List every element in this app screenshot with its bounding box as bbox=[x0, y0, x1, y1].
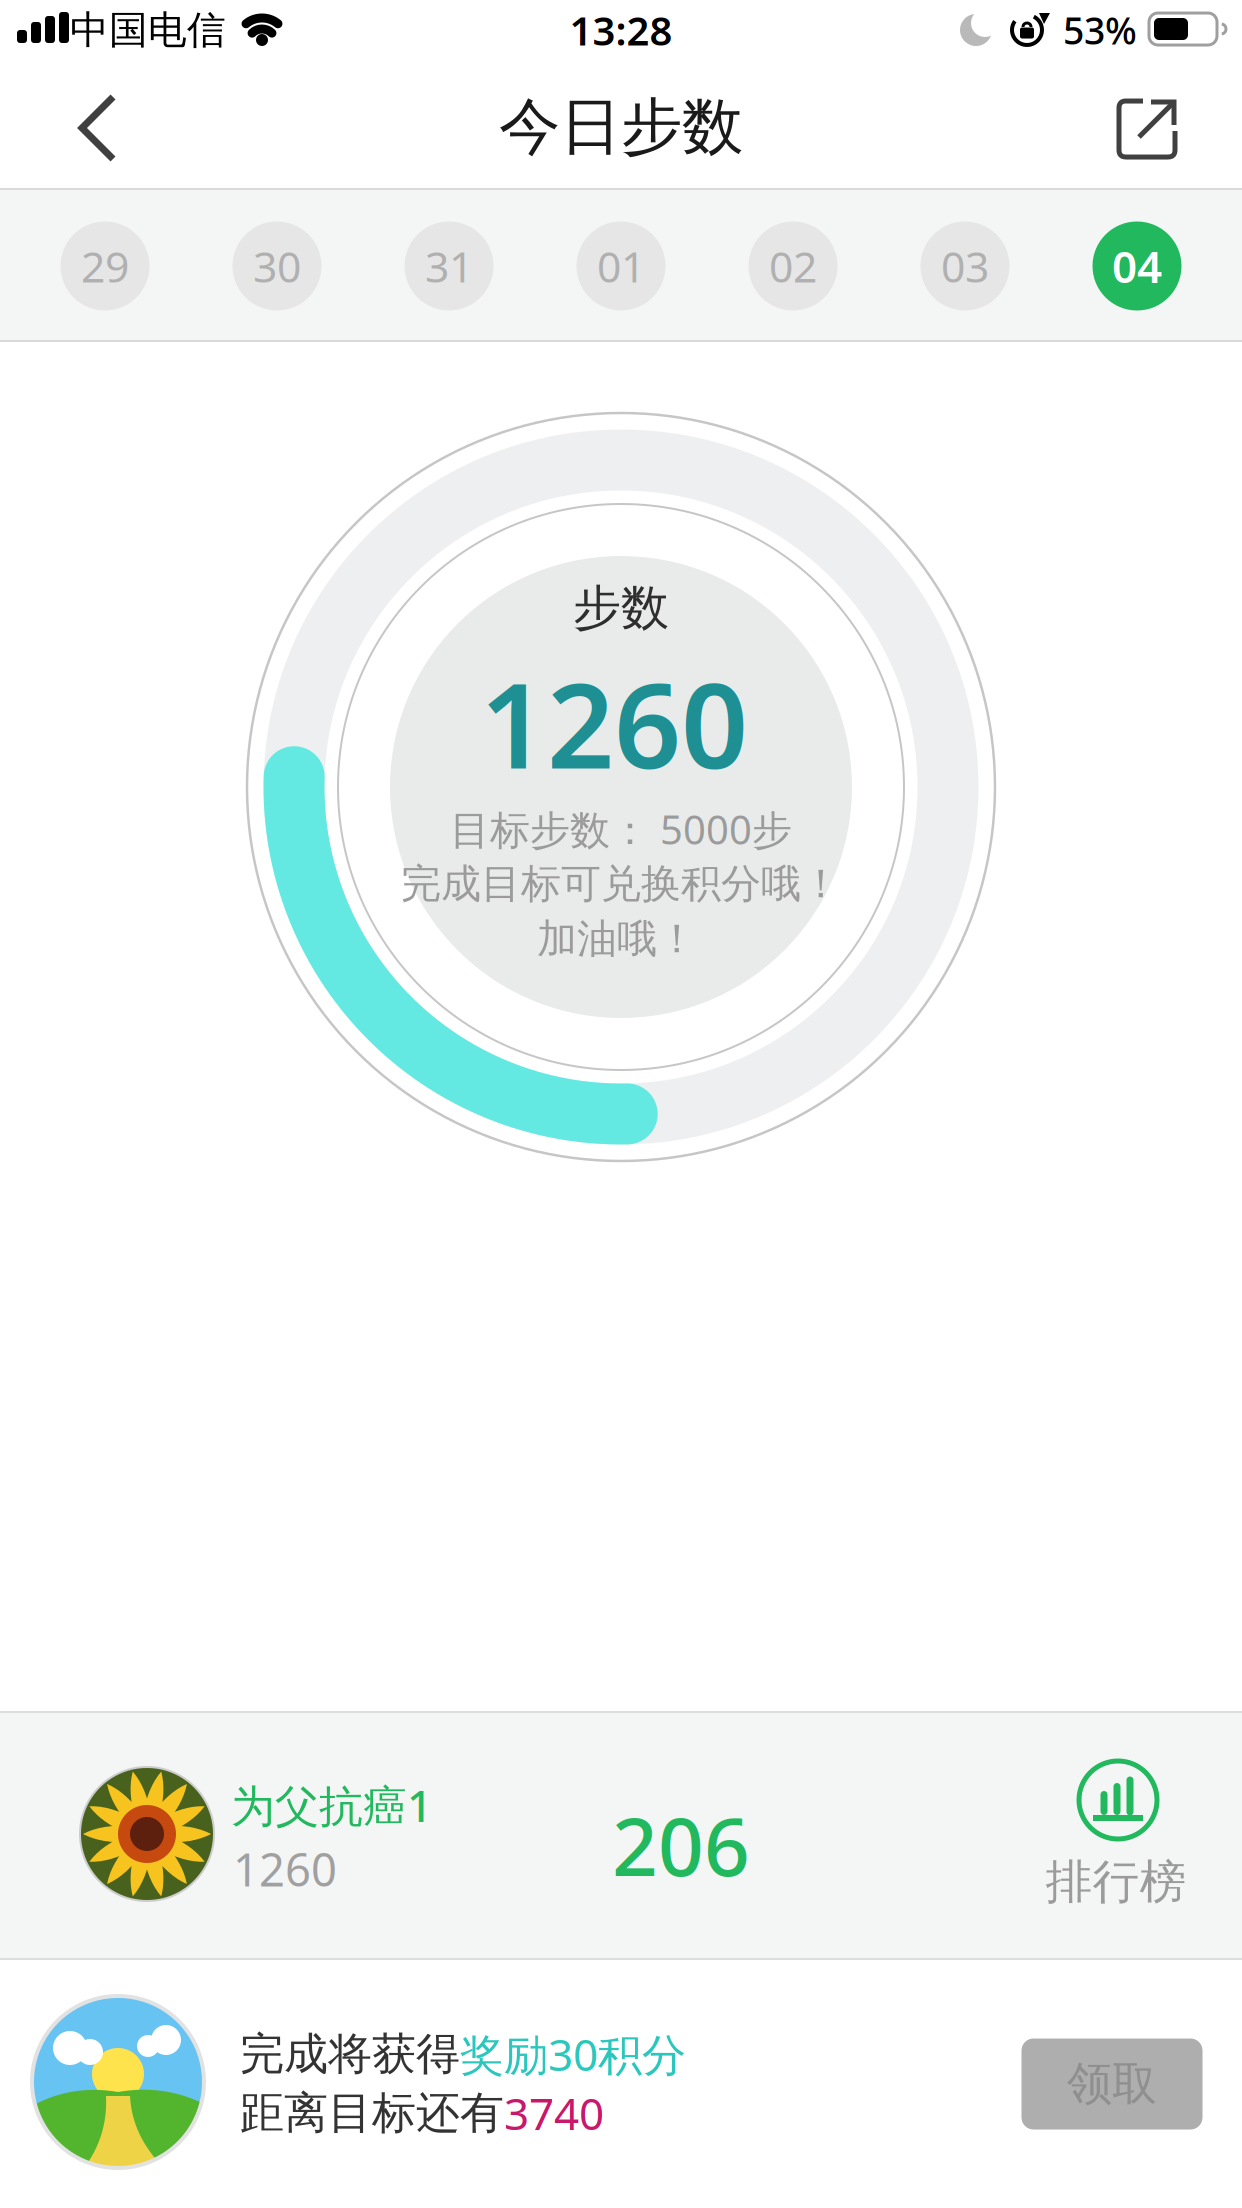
staticText: 距离目标还有 bbox=[240, 2086, 504, 2140]
staticText: 01 bbox=[597, 238, 645, 294]
staticText: 中国电信 bbox=[70, 6, 226, 54]
staticText: 03 bbox=[941, 238, 989, 294]
staticText: 今日步数 bbox=[499, 89, 743, 165]
button[interactable]: Share bbox=[1117, 99, 1177, 159]
staticText: 206 bbox=[612, 1792, 750, 1898]
button[interactable]: 领取 bbox=[1021, 2038, 1202, 2129]
staticText: 完成目标可兑换积分哦！ bbox=[401, 859, 841, 908]
staticText: 完成将获得 bbox=[240, 2027, 460, 2081]
staticText: 步数 bbox=[573, 578, 669, 637]
staticText: 目标步数： 5000步 bbox=[450, 802, 792, 855]
staticText: 29 bbox=[81, 238, 129, 294]
staticText: 31 bbox=[425, 238, 473, 294]
staticText: 1260 bbox=[233, 1839, 337, 1899]
button[interactable]: Back bbox=[57, 83, 137, 173]
staticText: 02 bbox=[769, 238, 817, 294]
button[interactable]: 30 bbox=[232, 221, 321, 310]
button[interactable]: 排行榜 bbox=[1054, 1754, 1182, 1914]
staticText: 领取 bbox=[1067, 2056, 1157, 2112]
staticText: 13:28 bbox=[569, 3, 672, 56]
staticText: 1260 bbox=[480, 645, 748, 801]
staticText: 3740 bbox=[504, 2084, 604, 2142]
button[interactable]: 03 bbox=[920, 221, 1009, 310]
staticText: 为父抗癌1 bbox=[231, 1776, 432, 1834]
button[interactable]: 04 bbox=[1092, 221, 1181, 310]
staticText: 30 bbox=[253, 238, 301, 294]
staticText: 排行榜 bbox=[1045, 1853, 1186, 1911]
staticText: 奖励30积分 bbox=[460, 2025, 686, 2083]
button[interactable]: 01 bbox=[576, 221, 665, 310]
button[interactable]: 29 bbox=[60, 221, 149, 310]
staticText: 53% bbox=[1063, 5, 1137, 55]
staticText: 04 bbox=[1112, 237, 1162, 295]
button[interactable]: 31 bbox=[404, 221, 493, 310]
button[interactable]: 02 bbox=[748, 221, 837, 310]
staticText: 加油哦！ bbox=[537, 914, 697, 963]
